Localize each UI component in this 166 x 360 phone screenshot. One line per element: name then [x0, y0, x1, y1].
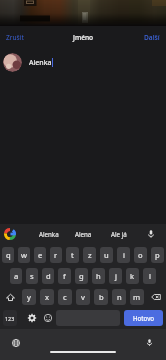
- button[interactable]: p: [151, 247, 164, 263]
- button[interactable]: Alenka: [0, 48, 166, 76]
- button[interactable]: m: [130, 289, 144, 305]
- button[interactable]: Hotovo: [124, 310, 163, 326]
- staticText: Zrušit: [6, 33, 24, 42]
- button[interactable]: w: [18, 247, 30, 263]
- button[interactable]: j: [109, 268, 122, 284]
- button[interactable]: Zrušit: [5, 30, 25, 45]
- staticText: Ale já: [111, 230, 127, 238]
- button[interactable]: Voice input: [136, 224, 166, 244]
- staticText: o: [138, 250, 143, 260]
- button[interactable]: b: [94, 289, 108, 305]
- button[interactable]: a: [10, 268, 22, 284]
- button[interactable]: h: [92, 268, 105, 284]
- staticText: p: [155, 250, 160, 260]
- button[interactable]: Emoji: [40, 310, 56, 326]
- staticText: Alenka: [39, 230, 59, 238]
- button[interactable]: u: [100, 247, 113, 263]
- button[interactable]: y: [22, 289, 36, 305]
- staticText: g: [79, 271, 84, 281]
- button[interactable]: o: [134, 247, 147, 263]
- button[interactable]: Ale já: [101, 224, 136, 244]
- staticText: q: [6, 250, 11, 260]
- button[interactable]: r: [50, 247, 62, 263]
- staticText: m: [133, 292, 141, 302]
- button[interactable]: q: [2, 247, 14, 263]
- staticText: s: [30, 271, 34, 281]
- button[interactable]: Change language: [9, 336, 22, 349]
- staticText: f: [63, 271, 66, 281]
- button[interactable]: i: [117, 247, 130, 263]
- staticText: Jméno: [73, 33, 94, 42]
- staticText: c: [63, 292, 67, 302]
- button[interactable]: f: [58, 268, 71, 284]
- button[interactable]: x: [40, 289, 54, 305]
- staticText: w: [21, 250, 27, 260]
- button[interactable]: Alena: [66, 224, 101, 244]
- button[interactable]: c: [58, 289, 72, 305]
- staticText: b: [99, 292, 104, 302]
- button[interactable]: s: [26, 268, 38, 284]
- staticText: Hotovo: [133, 314, 155, 322]
- button[interactable]: k: [126, 268, 139, 284]
- button[interactable]: n: [112, 289, 126, 305]
- button[interactable]: z: [83, 247, 96, 263]
- staticText: l: [149, 271, 151, 281]
- staticText: v: [81, 292, 85, 302]
- staticText: z: [88, 250, 92, 260]
- staticText: x: [45, 292, 50, 302]
- staticText: Další: [144, 33, 160, 42]
- staticText: j: [115, 271, 117, 281]
- button[interactable]: t: [66, 247, 79, 263]
- button[interactable]: Alenka: [32, 224, 66, 244]
- button[interactable]: g: [75, 268, 88, 284]
- staticText: y: [27, 292, 31, 302]
- button[interactable]: d: [42, 268, 54, 284]
- staticText: h: [96, 271, 101, 281]
- staticText: i: [123, 250, 125, 260]
- button[interactable]: v: [76, 289, 90, 305]
- button[interactable]: e: [34, 247, 46, 263]
- button[interactable]: Shift: [0, 289, 20, 305]
- staticText: e: [38, 250, 43, 260]
- button[interactable]: Voice input: [143, 336, 156, 349]
- staticText: 123: [5, 315, 15, 322]
- staticText: r: [54, 250, 58, 260]
- staticText: u: [104, 250, 109, 260]
- button[interactable]: Backspace: [146, 289, 166, 305]
- staticText: Alena: [75, 230, 92, 238]
- button[interactable]: 123: [3, 310, 17, 326]
- staticText: d: [46, 271, 51, 281]
- staticText: k: [130, 271, 135, 281]
- staticText: n: [117, 292, 122, 302]
- button[interactable]: Další: [143, 30, 161, 45]
- button[interactable]: l: [143, 268, 156, 284]
- staticText: a: [14, 271, 19, 281]
- button[interactable]: Keyboard settings: [24, 310, 40, 326]
- button[interactable]: Google search: [0, 224, 32, 244]
- staticText: t: [71, 250, 74, 260]
- staticText: Alenka: [29, 57, 52, 67]
